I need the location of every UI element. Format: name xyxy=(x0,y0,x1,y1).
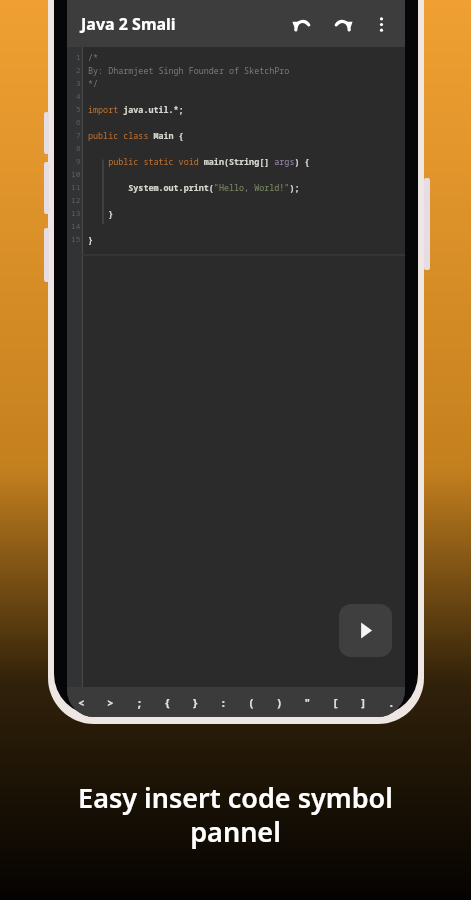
staticText: */ xyxy=(88,78,99,89)
button[interactable]: Run code xyxy=(339,604,392,657)
button[interactable]: : xyxy=(209,687,237,717)
staticText: } xyxy=(192,695,199,710)
button[interactable]: ] xyxy=(349,687,377,717)
staticText: System.out.print("Hello, World!"); xyxy=(88,182,300,193)
button[interactable]: } xyxy=(181,687,209,717)
staticText: ( xyxy=(248,695,255,710)
staticText: By: Dharmjeet Singh Founder of SketchPro xyxy=(88,65,290,76)
staticText: > xyxy=(107,695,114,710)
staticText: " xyxy=(304,695,311,710)
staticText: 6 xyxy=(76,117,81,128)
button[interactable]: Undo xyxy=(285,8,317,40)
staticText: Easy insert code symbol pannel xyxy=(34,779,437,850)
button[interactable]: ( xyxy=(237,687,265,717)
staticText: ) xyxy=(276,695,283,710)
staticText: 10 xyxy=(71,169,81,180)
staticText: < xyxy=(78,695,85,710)
staticText: ] xyxy=(360,695,367,710)
staticText: Java 2 Smali xyxy=(81,13,176,35)
staticText: { xyxy=(164,695,171,710)
button[interactable]: > xyxy=(96,687,125,717)
staticText: 12 xyxy=(71,195,81,206)
staticText: : xyxy=(220,695,227,710)
staticText: 14 xyxy=(71,221,81,232)
staticText: 15 xyxy=(71,234,81,245)
staticText: } xyxy=(88,208,114,219)
button[interactable]: More options xyxy=(365,8,397,40)
button[interactable]: < xyxy=(67,687,96,717)
staticText: public class Main { xyxy=(88,130,184,141)
button[interactable]: [ xyxy=(321,687,349,717)
staticText: import java.util.*; xyxy=(88,104,184,115)
staticText: 1 xyxy=(76,52,81,63)
staticText: 2 xyxy=(76,65,81,76)
staticText: 3 xyxy=(76,78,81,89)
staticText: 9 xyxy=(76,156,81,167)
button[interactable]: Redo xyxy=(327,8,359,40)
staticText: } xyxy=(88,234,94,245)
staticText: 5 xyxy=(76,104,81,115)
button[interactable]: . xyxy=(377,687,405,717)
button[interactable]: " xyxy=(293,687,321,717)
staticText: public static void main(String[] args) { xyxy=(88,156,310,167)
button[interactable]: ; xyxy=(125,687,153,717)
button[interactable]: { xyxy=(153,687,181,717)
staticText: [ xyxy=(332,695,339,710)
staticText: 13 xyxy=(71,208,81,219)
staticText: 8 xyxy=(76,143,81,154)
staticText: /* xyxy=(88,52,99,63)
staticText: 11 xyxy=(71,182,81,193)
button[interactable]: ) xyxy=(265,687,293,717)
staticText: . xyxy=(388,695,395,710)
staticText: 4 xyxy=(76,91,81,102)
staticText: 7 xyxy=(76,130,81,141)
staticText: ; xyxy=(136,695,143,710)
